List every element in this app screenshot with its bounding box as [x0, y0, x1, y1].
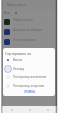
staticText: Отчёт за квартал	[13, 38, 37, 42]
button[interactable]: Файлы	[39, 106, 57, 113]
staticText: Последнему открытию	[13, 84, 45, 88]
button[interactable]: Документ в таблицах	[2, 27, 57, 37]
staticText: ОТМЕНА	[24, 90, 35, 94]
button[interactable]: Отчёт за квартал	[2, 37, 57, 47]
button[interactable]: Имени	[3, 56, 55, 64]
button[interactable]: Главная	[2, 106, 21, 113]
staticText: Имя	[4, 11, 11, 15]
button[interactable]: Размеру	[3, 65, 55, 73]
button[interactable]: Мой диск	[2, 0, 57, 9]
staticText: Сортировать по	[5, 51, 32, 56]
button[interactable]: Последнему изменению	[3, 73, 55, 81]
staticText: Мой диск	[7, 2, 26, 7]
staticText: Документ в таблицах	[13, 28, 42, 32]
staticText: вчера	[13, 43, 20, 46]
staticText: Общий доступ	[13, 18, 33, 22]
button[interactable]: Доступные мне	[21, 106, 39, 113]
staticText: Размеру	[13, 67, 25, 71]
button[interactable]: Последнему открытию	[3, 82, 55, 90]
staticText: Последнему изменению	[13, 75, 47, 79]
button[interactable]: Имя	[4, 10, 17, 15]
button[interactable]: ОТМЕНА	[22, 89, 37, 95]
staticText: Имени	[13, 58, 23, 62]
button[interactable]: Общий доступ	[2, 17, 57, 27]
